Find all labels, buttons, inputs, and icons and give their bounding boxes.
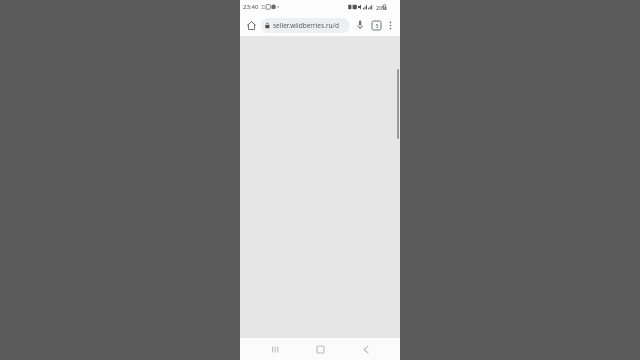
staticText: seller.wildberries.ru/d: [273, 21, 339, 30]
button[interactable]: seller.wildberries.ru/d: [261, 18, 350, 33]
button[interactable]: Recent apps: [264, 338, 286, 360]
button[interactable]: Home: [309, 338, 331, 360]
button[interactable]: Voice search: [353, 18, 367, 32]
button[interactable]: More options: [384, 19, 396, 31]
button[interactable]: Home: [244, 18, 258, 32]
staticText: 20%: [376, 4, 387, 11]
staticText: 5: [375, 22, 379, 29]
button[interactable]: Tabs: [369, 18, 383, 32]
button[interactable]: Back: [355, 338, 377, 360]
staticText: 23:40: [243, 3, 259, 11]
